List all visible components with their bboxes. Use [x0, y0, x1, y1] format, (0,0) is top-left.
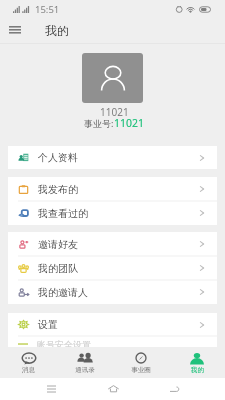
staticText: 邀请好友 — [38, 238, 78, 251]
button[interactable]: Recents — [40, 378, 62, 400]
button[interactable]: 我的邀请人 — [8, 280, 217, 304]
staticText: 我的团队 — [38, 262, 78, 275]
button[interactable]: 个人资料 — [8, 146, 217, 169]
button[interactable]: Home — [102, 378, 124, 400]
staticText: 事业号: — [84, 117, 114, 129]
staticText: 11021 — [114, 116, 145, 130]
staticText: 我的 — [191, 366, 204, 374]
staticText: 我发布的 — [38, 183, 78, 196]
button[interactable]: 我的 — [169, 347, 225, 378]
button[interactable]: 我查看过的 — [8, 201, 217, 225]
button[interactable]: Menu — [0, 18, 26, 44]
button[interactable]: 我发布的 — [8, 177, 217, 201]
staticText: 事业圈 — [131, 366, 151, 374]
staticText: 11021 — [100, 105, 129, 119]
button[interactable]: 我的团队 — [8, 256, 217, 280]
staticText: 我查看过的 — [38, 207, 88, 220]
staticText: 通讯录 — [75, 366, 95, 374]
button[interactable]: 邀请好友 — [8, 232, 217, 256]
button[interactable]: Back — [163, 378, 185, 400]
button[interactable]: Avatar — [82, 53, 143, 103]
button[interactable]: 消息 — [0, 347, 57, 378]
button[interactable]: 账号安全设置 — [8, 336, 217, 347]
staticText: 我的 — [45, 23, 69, 38]
staticText: 我的邀请人 — [38, 286, 88, 299]
button[interactable]: 通讯录 — [57, 347, 113, 378]
staticText: 设置 — [38, 318, 58, 331]
staticText: 个人资料 — [38, 151, 78, 164]
button[interactable]: 设置 — [8, 313, 217, 336]
staticText: 账号安全设置 — [37, 339, 91, 350]
button[interactable]: 事业圈 — [113, 347, 169, 378]
staticText: 消息 — [22, 366, 35, 374]
staticText: 15:51 — [35, 3, 60, 16]
